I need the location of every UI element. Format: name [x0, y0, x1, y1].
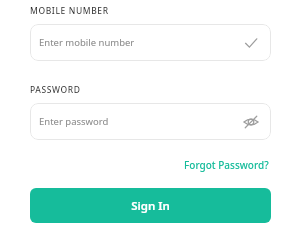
- button[interactable]: Enter mobile number: [30, 24, 271, 61]
- button[interactable]: Forgot Password?: [182, 156, 271, 174]
- staticText: Sign In: [131, 198, 170, 214]
- staticText: PASSWORD: [30, 84, 81, 96]
- staticText: Enter mobile number: [39, 36, 240, 49]
- button[interactable]: Show password: [240, 111, 262, 133]
- button[interactable]: Mobile number valid: [240, 32, 262, 54]
- staticText: Enter password: [39, 115, 240, 128]
- button[interactable]: Enter password: [30, 103, 271, 140]
- staticText: MOBILE NUMBER: [30, 5, 109, 17]
- staticText: Forgot Password?: [184, 158, 269, 172]
- button[interactable]: Sign In: [30, 188, 271, 223]
